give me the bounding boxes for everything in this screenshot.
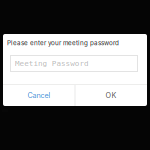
staticText: Cancel <box>27 91 50 100</box>
staticText: Meeting Password <box>15 59 89 68</box>
button[interactable]: Cancel <box>3 85 74 106</box>
staticText: Please enter your meeting password <box>7 39 119 47</box>
button[interactable]: OK <box>75 85 146 106</box>
staticText: OK <box>105 91 116 100</box>
